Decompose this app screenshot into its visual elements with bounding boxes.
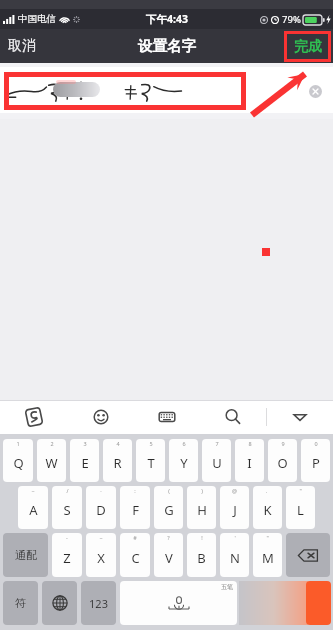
staticText: ' [234,534,236,541]
staticText: Y [180,454,188,472]
button[interactable]: 6 [169,439,198,482]
staticText: 123 [89,596,108,611]
staticText: 2 [50,440,54,447]
staticText: " [266,534,269,541]
staticText: V [165,549,173,567]
button[interactable]: Clear text [304,80,326,102]
button[interactable]: Keyboard layout [134,400,200,434]
button[interactable]: 7 [202,439,231,482]
button[interactable]: 0 [301,439,330,482]
staticText: ) [201,487,203,494]
button[interactable]: " [286,486,315,529]
staticText: 中国电信 [18,13,56,25]
button[interactable]: Search [200,400,266,434]
staticText: 取消 [8,37,36,55]
staticText: 1 [16,440,20,447]
button[interactable]: Enter [306,581,331,625]
button[interactable]: ! [187,533,216,577]
staticText: ? [167,534,170,541]
staticText: 符 [15,596,26,610]
button[interactable]: · [86,486,116,529]
button[interactable]: 符 [3,581,38,625]
staticText: # [133,534,137,541]
button[interactable]: 9 [268,439,297,482]
button[interactable]: Switch language [42,581,77,625]
staticText: 、 [265,487,271,494]
staticText: P [312,454,320,472]
staticText: T [147,454,155,472]
staticText: U [212,454,222,472]
button[interactable]: 完成 [284,31,331,62]
button[interactable]: " [253,533,282,577]
staticText: 3 [83,440,87,447]
button[interactable]: # [120,533,150,577]
button[interactable]: ~ [18,486,48,529]
button[interactable]: 5 [136,439,165,482]
staticText: ( [168,487,170,494]
staticText: 6 [182,440,186,447]
staticText: I [247,454,252,472]
staticText: O [277,454,288,472]
staticText: - [66,534,68,541]
staticText: J [233,501,237,519]
button[interactable]: Space [120,581,237,625]
button[interactable]: 123 [81,581,116,625]
button[interactable]: ' [220,533,249,577]
staticText: 通配 [15,548,37,562]
button[interactable]: Backspace [286,533,330,577]
button[interactable]: 8 [235,439,264,482]
staticText: G [164,501,174,519]
button[interactable]: 、 [253,486,282,529]
staticText: 五笔 [221,583,233,591]
button[interactable]: / [52,486,82,529]
button[interactable]: ~ [86,533,116,577]
staticText: 7 [215,440,219,447]
staticText: X [97,549,105,567]
button[interactable]: ? [154,533,183,577]
staticText: : [134,487,136,494]
button[interactable]: 取消 [0,29,44,63]
button[interactable]: ) [187,486,216,529]
staticText: M [262,549,274,567]
staticText: H [197,501,207,519]
staticText: S [63,501,71,519]
button[interactable]: 3 [70,439,99,482]
staticText: ~ [31,487,35,494]
staticText: / [66,487,69,494]
staticText: 设置名字 [138,37,196,55]
button[interactable]: 2 [37,439,66,482]
staticText: ~ [99,534,103,541]
staticText: ! [201,534,203,541]
button[interactable]: @ [220,486,249,529]
staticText: Q [13,454,24,472]
staticText: 完成 [294,38,322,56]
button[interactable]: Sogou input [0,400,67,434]
staticText: C [131,549,140,567]
staticText: 79% [282,13,301,26]
button[interactable]: 4 [103,439,132,482]
staticText: 8 [248,440,252,447]
button[interactable]: 通配 [3,533,48,577]
button[interactable]: - [52,533,82,577]
staticText: L [297,501,304,519]
staticText: R [113,454,122,472]
staticText: D [96,501,106,519]
staticText: 9 [281,440,285,447]
staticText: A [29,501,38,519]
staticText: @ [232,487,237,494]
button[interactable]: : [120,486,150,529]
staticText: · [100,487,102,494]
button[interactable]: Hide keyboard [267,400,333,434]
staticText: " [299,487,302,494]
staticText: Z [63,549,71,567]
button[interactable] [0,67,333,113]
staticText: N [230,549,240,567]
button[interactable]: 1 [3,439,33,482]
button[interactable]: ( [154,486,183,529]
staticText: E [81,454,89,472]
button[interactable]: Emoji [67,400,134,434]
staticText: W [45,454,58,472]
staticText: K [263,501,272,519]
staticText: B [197,549,206,567]
staticText: 4 [116,440,120,447]
